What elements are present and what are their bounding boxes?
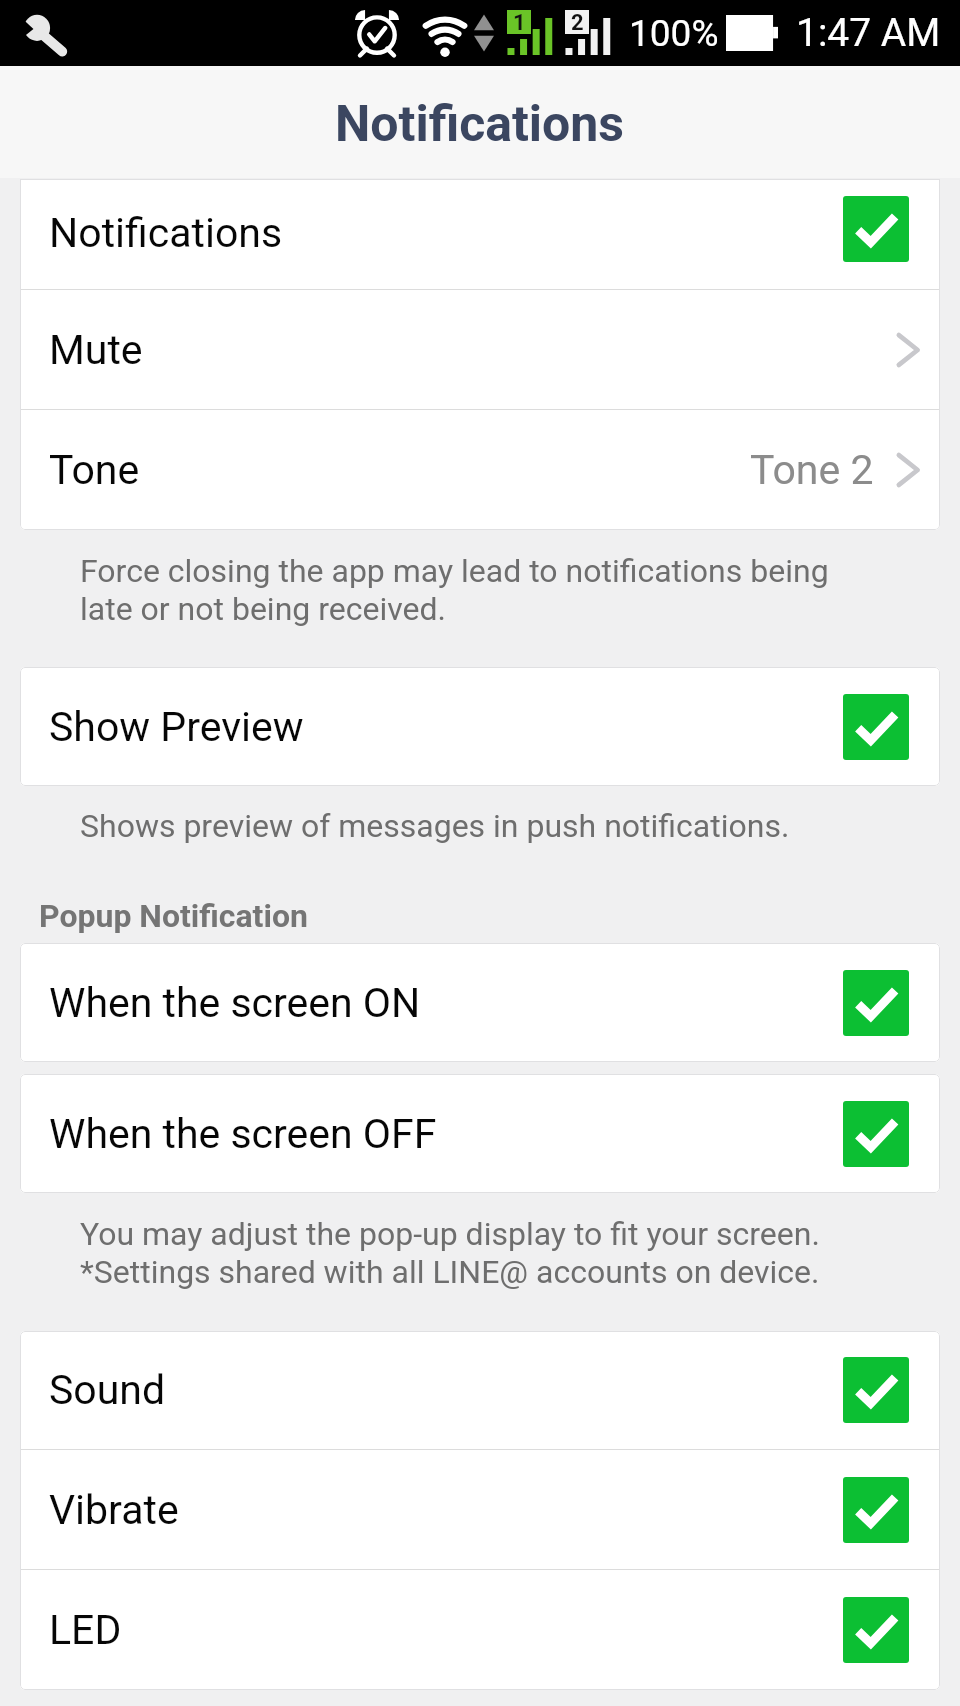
staticText: When the screen OFF — [49, 1110, 437, 1158]
button[interactable]: LED — [20, 1570, 940, 1690]
staticText: 1:47 AM — [796, 10, 941, 56]
staticText: Tone 2 — [750, 446, 874, 494]
staticText: Popup Notification — [39, 897, 308, 935]
staticText: Sound — [49, 1366, 166, 1414]
button[interactable]: When the screen ON, on — [843, 970, 909, 1036]
other: Open — [896, 453, 920, 487]
staticText: When the screen ON — [49, 979, 421, 1027]
button[interactable]: Notifications, on — [843, 196, 909, 262]
button[interactable]: When the screen OFF, on — [843, 1101, 909, 1167]
staticText: 2 — [571, 10, 584, 34]
staticText: Notifications — [49, 209, 283, 257]
staticText: Show Preview — [49, 703, 304, 751]
button[interactable]: When the screen ON — [20, 943, 940, 1062]
button[interactable]: Vibrate, on — [843, 1477, 909, 1543]
staticText: Shows preview of messages in push notifi… — [80, 807, 790, 845]
staticText: You may adjust the pop-up display to fit… — [80, 1215, 820, 1291]
button[interactable]: Show Preview, on — [843, 694, 909, 760]
button[interactable]: Vibrate — [20, 1450, 940, 1569]
button[interactable]: Sound — [20, 1331, 940, 1449]
staticText: Mute — [49, 326, 143, 374]
button[interactable]: Mute — [20, 290, 940, 409]
staticText: Notifications — [335, 95, 625, 154]
button[interactable]: When the screen OFF — [20, 1074, 940, 1193]
button[interactable]: Tone — [20, 410, 940, 530]
button[interactable]: Show Preview — [20, 667, 940, 786]
other: Open — [896, 333, 920, 367]
staticText: 1 — [513, 10, 526, 34]
staticText: Vibrate — [49, 1486, 179, 1534]
staticText: Tone — [49, 446, 140, 494]
staticText: Force closing the app may lead to notifi… — [80, 552, 829, 628]
button[interactable]: LED, on — [843, 1597, 909, 1663]
button[interactable]: Notifications — [20, 179, 940, 289]
staticText: 100% — [629, 12, 719, 55]
button[interactable]: Sound, on — [843, 1357, 909, 1423]
staticText: LED — [49, 1606, 122, 1654]
